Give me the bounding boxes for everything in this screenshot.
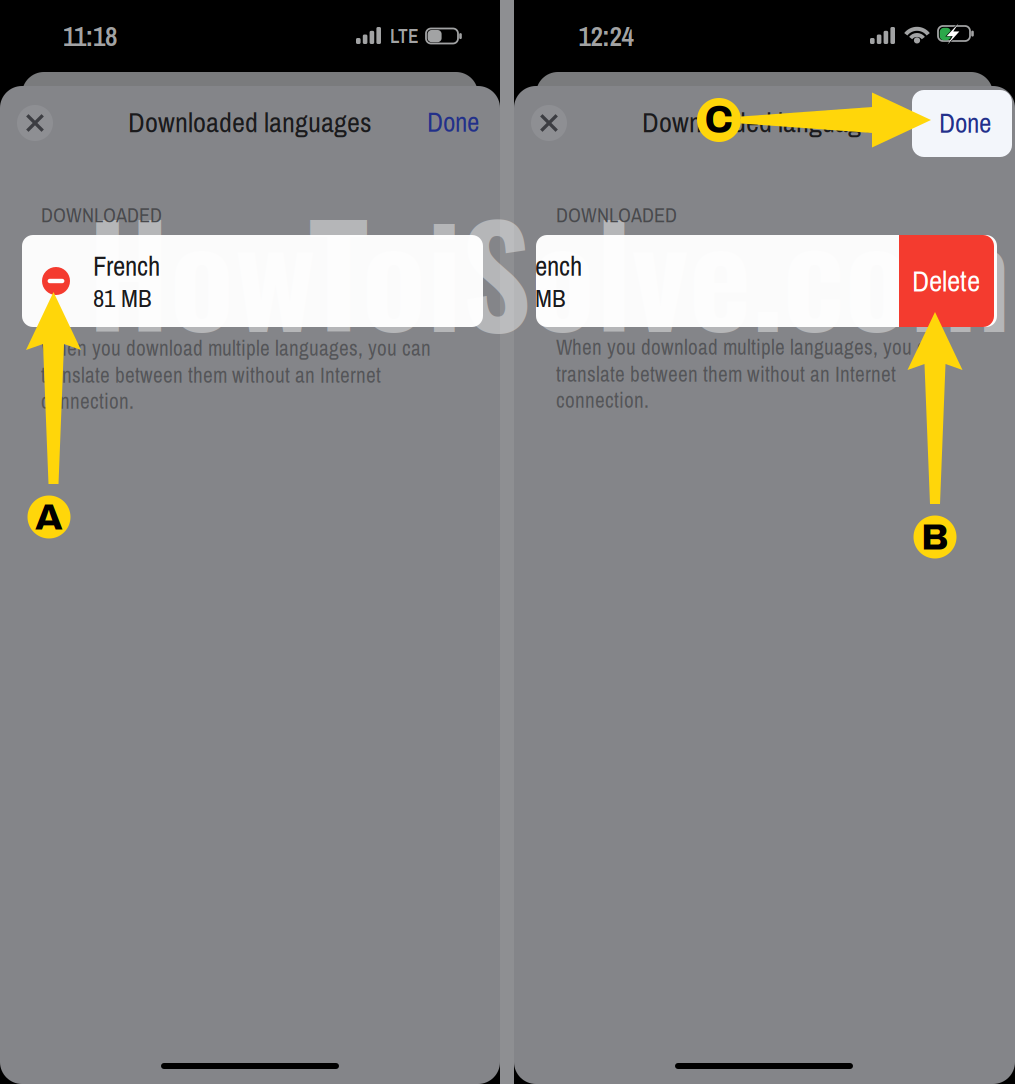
staticText: LTE — [390, 23, 419, 49]
staticText: Done — [939, 105, 991, 141]
staticText: ench — [535, 248, 582, 284]
staticText: Delete — [912, 261, 980, 301]
staticText: connection. — [41, 387, 134, 415]
staticText: DOWNLOADED — [41, 201, 162, 229]
button[interactable]: Done — [0, 0, 1015, 1084]
button[interactable]: Done — [0, 0, 500, 1084]
staticText: When you download multiple languages, yo… — [41, 334, 431, 362]
staticText: B — [921, 517, 949, 557]
staticText: connection. — [556, 386, 649, 414]
staticText: MB — [535, 281, 566, 315]
button[interactable]: Close — [514, 0, 1015, 1084]
button[interactable]: Delete — [514, 0, 1015, 1084]
staticText: When you download multiple languages, yo… — [556, 333, 936, 361]
staticText: translate between them without an Intern… — [556, 360, 896, 388]
staticText: C — [704, 99, 733, 141]
button[interactable]: French, 81 MB — [0, 0, 500, 1084]
staticText: DOWNLOADED — [556, 201, 677, 229]
staticText: French — [93, 248, 160, 284]
staticText: translate between them without an Intern… — [41, 361, 381, 389]
staticText: Done — [427, 104, 479, 140]
staticText: HowToiSolve.com — [87, 168, 1010, 372]
staticText: Downloaded languages — [128, 103, 372, 141]
staticText: 12:24 — [578, 18, 633, 54]
staticText: 11:18 — [63, 18, 117, 54]
staticText: 81 MB — [93, 281, 152, 315]
button[interactable]: Close — [0, 0, 500, 1084]
staticText: A — [35, 497, 63, 537]
staticText: Downloaded languages — [642, 103, 886, 141]
